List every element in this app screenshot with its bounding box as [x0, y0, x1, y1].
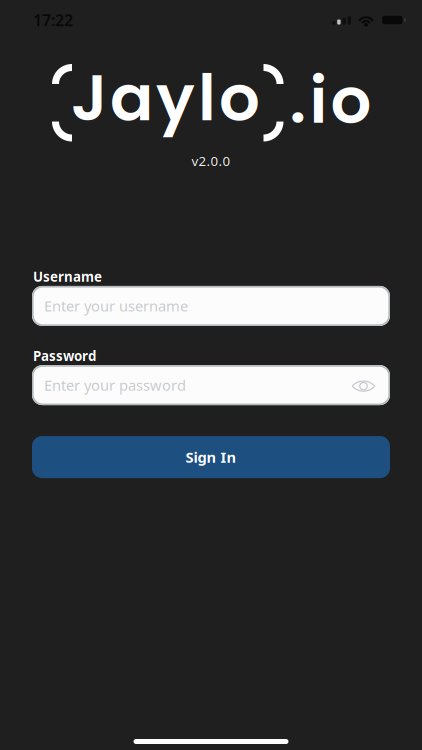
staticText: Sign In	[185, 447, 236, 467]
staticText: Enter your password	[44, 375, 186, 395]
staticText: .io	[289, 55, 371, 145]
staticText: Enter your username	[44, 296, 188, 316]
staticText: Password	[33, 347, 96, 365]
staticText: v2.0.0	[191, 152, 230, 170]
button[interactable]: Show password	[350, 372, 377, 399]
button[interactable]: Sign In	[32, 436, 390, 478]
staticText: Jaylo	[71, 53, 260, 143]
staticText: 17:22	[33, 9, 73, 31]
staticText: Username	[33, 268, 102, 285]
